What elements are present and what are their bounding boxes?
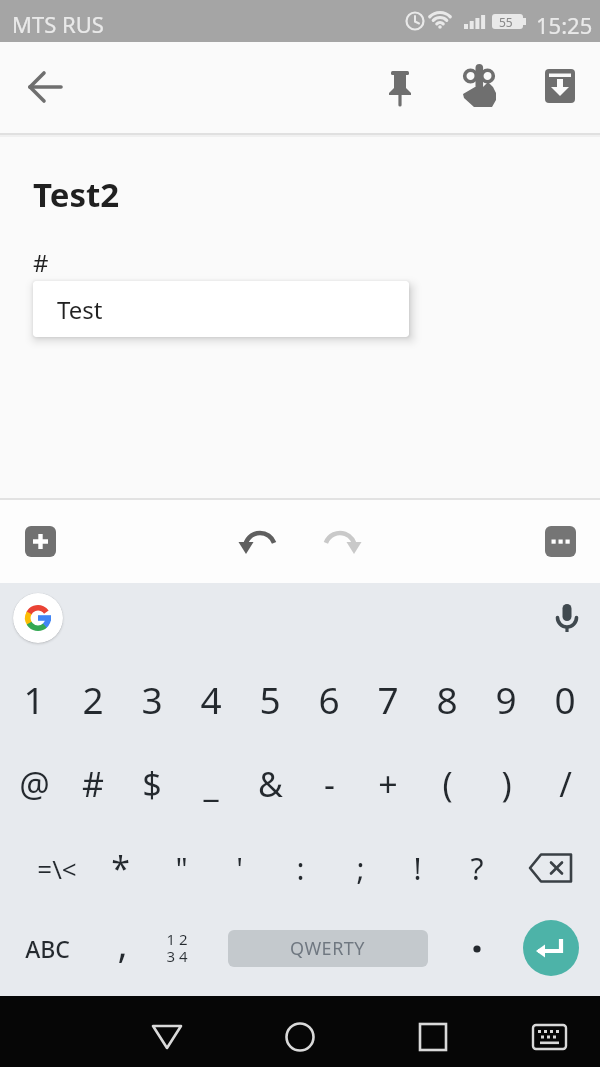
button[interactable]: " xyxy=(151,838,211,898)
staticText: ABC xyxy=(25,933,70,964)
staticText: ? xyxy=(470,848,484,889)
button[interactable]: ( xyxy=(417,754,477,814)
staticText: 0 xyxy=(554,674,576,724)
staticText: 5 xyxy=(259,674,281,724)
staticText: : xyxy=(296,848,305,889)
button[interactable] xyxy=(530,57,590,117)
button[interactable] xyxy=(545,596,589,640)
button[interactable]: QWERTY xyxy=(228,930,428,967)
button[interactable] xyxy=(450,57,510,117)
button[interactable] xyxy=(238,520,282,564)
button[interactable]: / xyxy=(535,754,595,814)
staticText: ! xyxy=(413,848,422,889)
button[interactable]: 4 xyxy=(181,669,241,729)
button[interactable]: 0 xyxy=(535,669,595,729)
button[interactable]: + xyxy=(358,754,418,814)
button[interactable]: Test xyxy=(33,281,409,337)
staticText: $ xyxy=(142,761,162,807)
button[interactable]: 2 xyxy=(63,669,123,729)
button[interactable]: $ xyxy=(122,754,182,814)
button[interactable] xyxy=(447,918,507,978)
staticText: ' xyxy=(236,848,243,889)
button[interactable]: ? xyxy=(447,838,507,898)
button[interactable]: 1 xyxy=(4,669,64,729)
staticText: 55 xyxy=(499,14,513,30)
button[interactable]: ! xyxy=(387,838,447,898)
staticText: =\< xyxy=(37,851,77,886)
button[interactable]: 1 2 3 4 xyxy=(147,918,207,978)
button[interactable]: & xyxy=(240,754,300,814)
button[interactable]: , xyxy=(92,913,152,973)
staticText: ) xyxy=(501,761,512,807)
button[interactable] xyxy=(403,1001,463,1061)
staticText: - xyxy=(324,761,335,807)
staticText: 1 2 3 4 xyxy=(166,929,188,967)
button[interactable]: ) xyxy=(476,754,536,814)
staticText: ( xyxy=(442,761,453,807)
staticText: 6 xyxy=(318,674,340,724)
button[interactable]: @ xyxy=(4,754,64,814)
button[interactable] xyxy=(13,593,63,643)
button[interactable]: 9 xyxy=(476,669,536,729)
staticText: * xyxy=(111,845,130,891)
button[interactable] xyxy=(137,1001,197,1061)
button[interactable]: : xyxy=(270,838,330,898)
button[interactable]: - xyxy=(299,754,359,814)
staticText: # xyxy=(33,246,49,279)
staticText: # xyxy=(82,761,104,807)
button[interactable]: ; xyxy=(330,838,390,898)
button[interactable]: 8 xyxy=(417,669,477,729)
button[interactable] xyxy=(270,1001,330,1061)
staticText: 8 xyxy=(436,674,458,724)
button[interactable]: ' xyxy=(209,838,269,898)
staticText: , xyxy=(117,917,128,969)
button[interactable] xyxy=(17,57,77,117)
staticText: Test2 xyxy=(33,172,120,217)
button[interactable]: _ xyxy=(181,754,241,814)
staticText: & xyxy=(258,761,283,807)
staticText: 2 xyxy=(82,674,104,724)
button[interactable] xyxy=(523,920,579,976)
staticText: 3 xyxy=(141,674,163,724)
button[interactable] xyxy=(521,838,581,898)
button[interactable]: ABC xyxy=(17,918,77,978)
staticText: 15:25 xyxy=(536,10,593,40)
button[interactable]: * xyxy=(90,838,150,898)
button[interactable]: 7 xyxy=(358,669,418,729)
staticText: _ xyxy=(203,761,219,807)
button[interactable]: 6 xyxy=(299,669,359,729)
staticText: " xyxy=(175,848,188,889)
staticText: Test xyxy=(57,293,103,326)
staticText: @ xyxy=(19,761,50,807)
button[interactable]: 3 xyxy=(122,669,182,729)
staticText: 7 xyxy=(377,674,399,724)
button[interactable] xyxy=(519,1001,579,1061)
button[interactable] xyxy=(318,520,362,564)
staticText: 4 xyxy=(200,674,222,724)
staticText: ; xyxy=(356,848,365,889)
staticText: 9 xyxy=(495,674,517,724)
staticText: 1 xyxy=(23,674,45,724)
button[interactable] xyxy=(25,526,56,557)
button[interactable]: # xyxy=(63,754,123,814)
staticText: / xyxy=(559,761,572,807)
button[interactable] xyxy=(545,526,576,557)
staticText: MTS RUS xyxy=(12,9,104,39)
staticText: + xyxy=(378,761,398,807)
button[interactable]: =\< xyxy=(27,838,87,898)
button[interactable] xyxy=(370,57,430,117)
staticText: QWERTY xyxy=(290,936,366,961)
button[interactable]: 5 xyxy=(240,669,300,729)
